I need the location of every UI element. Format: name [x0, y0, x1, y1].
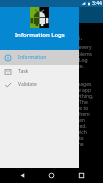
button[interactable]: Back	[15, 168, 30, 183]
staticText: Task	[18, 68, 29, 75]
staticText: Information	[18, 54, 47, 61]
button[interactable]: Task	[0, 65, 79, 78]
staticText: Validate	[18, 81, 37, 88]
staticText: 3:44	[92, 0, 102, 7]
button[interactable]: Recents	[74, 168, 89, 183]
staticText: Information Logs	[15, 31, 65, 39]
button[interactable]: Home	[44, 168, 59, 183]
button[interactable]: Validate	[0, 78, 79, 91]
staticText: Logging and Log class.	[4, 33, 83, 43]
staticText: Logging is an important part of every ap…	[4, 44, 94, 183]
button[interactable]: Information	[0, 50, 79, 65]
